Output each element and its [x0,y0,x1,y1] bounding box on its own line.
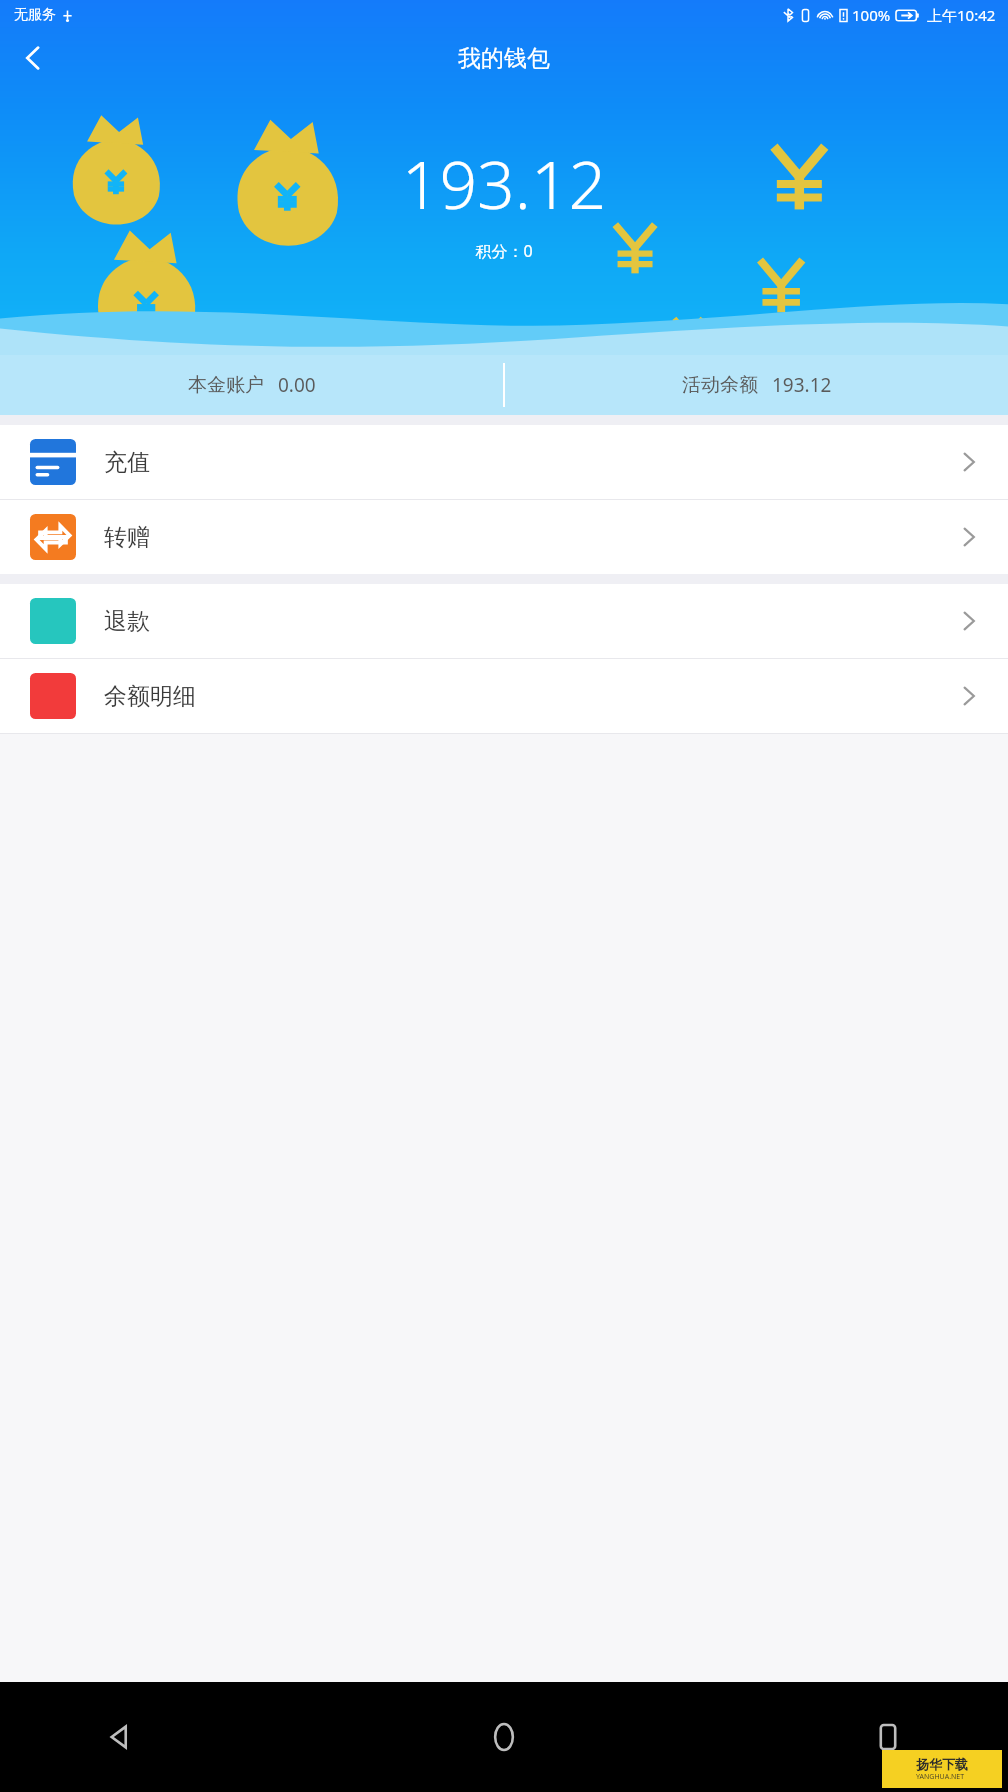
staticText: 充值 [104,448,150,477]
staticText: 100% [852,5,891,25]
button[interactable]: Recents [858,1707,918,1767]
staticText: 193.12 [0,138,1008,228]
staticText: 转赠 [104,523,150,552]
staticText: 我的钱包 [458,44,550,73]
staticText: 上午10:42 [927,5,996,25]
staticText: 本金账户 [188,373,264,397]
staticText: 活动余额 [682,373,758,397]
staticText: YANGHUA.NET [916,1772,965,1782]
staticText: 积分：0 [0,240,1008,262]
staticText: 扬华下载 [916,1756,968,1772]
button[interactable]: 本金账户 [0,355,503,415]
button[interactable]: 退款 [0,584,1008,658]
staticText: 193.12 [772,372,832,398]
staticText: 无服务 [14,6,56,24]
button[interactable]: 余额明细 [0,659,1008,733]
staticText: 0.00 [278,372,316,398]
button[interactable]: 充值 [0,425,1008,499]
button[interactable]: 转赠 [0,500,1008,574]
button[interactable]: 活动余额 [505,355,1008,415]
button[interactable]: Back [6,31,60,85]
button[interactable]: Home [474,1707,534,1767]
staticText: 退款 [104,607,150,636]
staticText: 余额明细 [104,682,196,711]
button[interactable]: Back [90,1707,150,1767]
